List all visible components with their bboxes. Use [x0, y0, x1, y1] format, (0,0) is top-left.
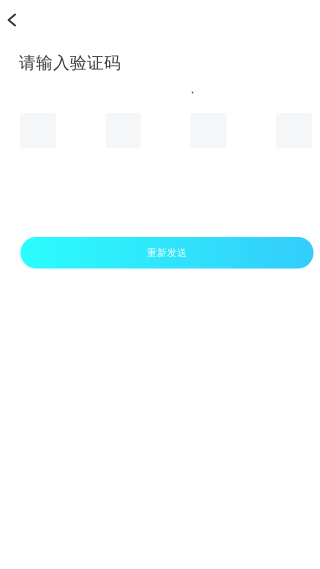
staticText: 请输入验证码	[19, 52, 121, 73]
button[interactable]: Back	[0, 5, 27, 35]
staticText: 重新发送	[147, 247, 187, 259]
button[interactable]: 重新发送	[20, 237, 313, 268]
